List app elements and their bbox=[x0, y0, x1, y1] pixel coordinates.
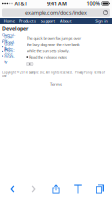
staticText: Copyright © 2014 Example Inc. All rights… bbox=[2, 71, 105, 78]
staticText: Downloads bbox=[4, 34, 14, 50]
button[interactable]: Downloads bbox=[2, 40, 24, 44]
staticText: 9:41 AM bbox=[47, 0, 67, 7]
staticText: Developer bbox=[2, 25, 28, 32]
staticText: Products bbox=[19, 18, 36, 24]
staticText: Guides bbox=[4, 41, 13, 52]
button[interactable]: Forward bbox=[23, 182, 45, 195]
staticText: Home bbox=[4, 18, 15, 24]
button[interactable]: Sign in bbox=[93, 18, 110, 24]
staticText: Read the release notes bbox=[29, 54, 67, 60]
staticText: Sign in bbox=[95, 18, 108, 24]
button[interactable]: Tabs bbox=[89, 182, 111, 195]
button[interactable]: Products bbox=[17, 18, 38, 24]
button[interactable]: Back bbox=[1, 182, 23, 195]
button[interactable]: example.com/docs/index bbox=[2, 8, 110, 17]
button[interactable]: Overview bbox=[2, 35, 24, 39]
button[interactable]: Share bbox=[45, 182, 67, 195]
staticText: AT&T bbox=[14, 0, 27, 7]
button[interactable]: Terms bbox=[50, 81, 62, 87]
button[interactable]: Bookmarks bbox=[67, 182, 89, 195]
button[interactable]: Support bbox=[38, 18, 58, 24]
staticText: Community bbox=[4, 48, 14, 64]
staticText: About bbox=[60, 18, 72, 24]
staticText: example.com/docs/index bbox=[25, 9, 87, 16]
button[interactable]: Guides bbox=[2, 45, 24, 48]
staticText: Support bbox=[40, 18, 55, 24]
staticText: 100% bbox=[87, 0, 101, 7]
button[interactable]: Reference bbox=[2, 50, 24, 53]
button[interactable]: Community bbox=[2, 54, 24, 58]
staticText: the lazy dog near the riverbank bbox=[26, 42, 79, 47]
button[interactable]: About bbox=[58, 18, 74, 24]
staticText: Terms bbox=[50, 81, 62, 87]
button[interactable] bbox=[26, 62, 33, 66]
staticText: The quick brown fox jumps over bbox=[26, 35, 81, 41]
button[interactable]: Home bbox=[1, 18, 17, 24]
staticText: Reference bbox=[4, 46, 14, 57]
staticText: while the sun sets slowly. bbox=[26, 48, 69, 53]
staticText: Overview bbox=[2, 32, 15, 43]
